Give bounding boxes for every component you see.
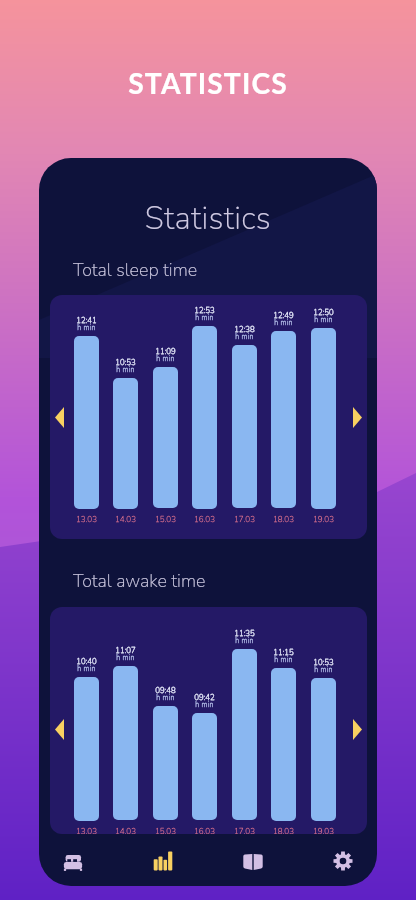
- button[interactable]: [271, 668, 296, 821]
- staticText: h min: [65, 664, 108, 674]
- button[interactable]: Settings: [321, 839, 365, 883]
- staticText: 18.03: [262, 514, 305, 525]
- button[interactable]: [74, 677, 99, 821]
- button[interactable]: [271, 331, 296, 508]
- staticText: 12:41: [65, 315, 108, 326]
- staticText: 14.03: [104, 826, 147, 834]
- staticText: 15.03: [144, 826, 187, 834]
- staticText: Total awake time: [73, 569, 206, 594]
- staticText: 10:53: [104, 357, 147, 368]
- button[interactable]: Next week: [353, 407, 362, 428]
- staticText: 17.03: [223, 514, 266, 525]
- staticText: 12:53: [183, 305, 226, 316]
- staticText: h min: [262, 655, 305, 665]
- staticText: Total sleep time: [73, 258, 198, 283]
- staticText: 13.03: [65, 514, 108, 525]
- staticText: h min: [302, 315, 345, 325]
- staticText: 14.03: [104, 514, 147, 525]
- staticText: 12:49: [262, 310, 305, 321]
- button[interactable]: Sleep: [51, 841, 95, 885]
- staticText: h min: [262, 318, 305, 328]
- staticText: 11:35: [223, 628, 266, 639]
- button[interactable]: [192, 713, 217, 820]
- button[interactable]: [311, 328, 336, 509]
- button[interactable]: Next week: [353, 719, 362, 740]
- staticText: h min: [223, 636, 266, 646]
- staticText: h min: [104, 653, 147, 663]
- staticText: h min: [144, 354, 187, 364]
- staticText: 11:07: [104, 645, 147, 656]
- button[interactable]: Previous week: [55, 719, 64, 740]
- button[interactable]: [192, 326, 217, 509]
- button[interactable]: [153, 706, 178, 820]
- button[interactable]: [232, 345, 257, 508]
- staticText: 09:48: [144, 685, 187, 696]
- staticText: Statistics: [39, 197, 377, 240]
- staticText: 13.03: [65, 826, 108, 834]
- button[interactable]: [232, 649, 257, 820]
- button[interactable]: Diary: [231, 840, 275, 884]
- staticText: STATISTICS: [0, 66, 416, 100]
- staticText: 18.03: [262, 826, 305, 834]
- staticText: 19.03: [302, 826, 345, 834]
- staticText: h min: [302, 665, 345, 675]
- staticText: h min: [183, 313, 226, 323]
- staticText: 09:42: [183, 692, 226, 703]
- button[interactable]: [74, 336, 99, 509]
- button[interactable]: [113, 666, 138, 820]
- staticText: h min: [144, 693, 187, 703]
- staticText: 12:50: [302, 307, 345, 318]
- staticText: h min: [104, 365, 147, 375]
- staticText: h min: [65, 323, 108, 333]
- staticText: h min: [223, 332, 266, 342]
- staticText: 11:09: [144, 346, 187, 357]
- button[interactable]: Statistics: [141, 839, 185, 883]
- staticText: 10:40: [65, 656, 108, 667]
- staticText: 12:38: [223, 324, 266, 335]
- staticText: 17.03: [223, 826, 266, 834]
- staticText: 15.03: [144, 514, 187, 525]
- staticText: h min: [183, 700, 226, 710]
- button[interactable]: [311, 678, 336, 821]
- button[interactable]: [153, 367, 178, 508]
- staticText: 16.03: [183, 826, 226, 834]
- button[interactable]: [113, 378, 138, 509]
- staticText: 11:15: [262, 647, 305, 658]
- staticText: 16.03: [183, 514, 226, 525]
- staticText: 10:53: [302, 657, 345, 668]
- staticText: 19.03: [302, 514, 345, 525]
- button[interactable]: Previous week: [55, 407, 64, 428]
